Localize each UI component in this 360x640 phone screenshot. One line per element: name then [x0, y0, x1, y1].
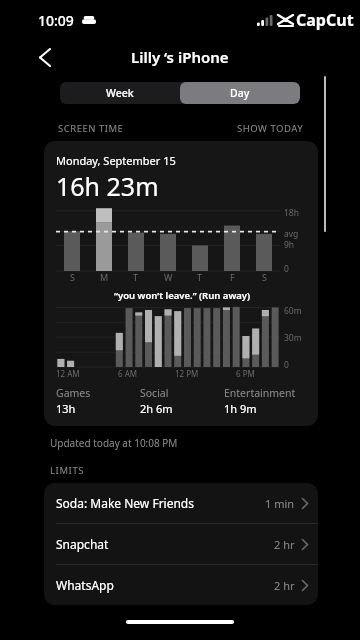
staticText: 1h 9m — [224, 401, 257, 416]
button[interactable]: Snapchat — [44, 524, 318, 565]
staticText: 12 AM — [56, 368, 80, 379]
button[interactable]: WhatsApp — [44, 565, 318, 605]
staticText: Lilly ‘s iPhone — [131, 47, 229, 67]
staticText: SCREEN TIME — [58, 122, 124, 135]
staticText: 2 hr — [274, 578, 295, 593]
staticText: SHOW TODAY — [237, 122, 304, 135]
staticText: 0 — [284, 263, 289, 275]
button[interactable]: Day — [180, 82, 300, 104]
staticText: F — [230, 271, 235, 283]
staticText: 2 hr — [274, 537, 295, 552]
button[interactable]: Soda: Make New Friends — [44, 483, 318, 524]
staticText: 12 PM — [175, 368, 199, 379]
staticText: 10:09 — [38, 11, 74, 30]
staticText: Week — [106, 86, 134, 100]
staticText: 16h 23m — [56, 169, 159, 203]
staticText: Day — [230, 86, 250, 100]
staticText: avg — [284, 228, 299, 240]
staticText: Entertainment — [224, 386, 296, 400]
staticText: Games — [56, 386, 91, 400]
staticText: 30m — [284, 332, 302, 344]
staticText: T — [133, 271, 139, 283]
staticText: Snapchat — [56, 536, 274, 552]
staticText: 13h — [56, 401, 76, 416]
staticText: 18h — [284, 207, 299, 219]
staticText: M — [100, 271, 109, 283]
staticText: 6 AM — [118, 368, 138, 379]
staticText: 9h — [284, 239, 295, 251]
staticText: Monday, September 15 — [56, 153, 176, 168]
staticText: 2h 6m — [140, 401, 173, 416]
staticText: 1 min — [265, 496, 295, 511]
staticText: 6 PM — [236, 368, 255, 379]
button[interactable]: Week — [60, 82, 180, 104]
staticText: “you won’t leave.” (Run away) — [114, 289, 251, 302]
staticText: 0 — [284, 359, 289, 371]
staticText: T — [197, 271, 203, 283]
button[interactable]: SHOW TODAY — [237, 122, 304, 135]
staticText: LIMITS — [50, 464, 85, 477]
staticText: Social — [140, 386, 169, 400]
staticText: Updated today at 10:08 PM — [50, 436, 178, 450]
staticText: WhatsApp — [56, 577, 274, 593]
staticText: S — [262, 271, 267, 283]
staticText: 60m — [284, 305, 302, 317]
button[interactable]: Back — [30, 43, 58, 71]
staticText: W — [164, 271, 173, 283]
staticText: S — [70, 271, 75, 283]
staticText: Soda: Make New Friends — [56, 495, 265, 511]
staticText: CapCut — [296, 9, 354, 31]
